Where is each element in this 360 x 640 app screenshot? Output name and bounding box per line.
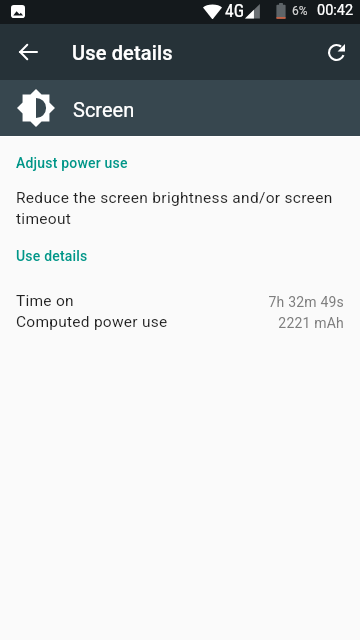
staticText: 00:42 xyxy=(317,2,354,19)
staticText: Computed power use xyxy=(16,313,168,331)
button[interactable]: Back xyxy=(0,24,56,80)
button[interactable]: Use details xyxy=(16,248,88,264)
button[interactable]: Adjust power use xyxy=(16,155,128,171)
button[interactable]: Time on xyxy=(16,292,344,310)
staticText: Use details xyxy=(72,41,173,64)
staticText: 4G xyxy=(225,1,244,22)
button[interactable]: Computed power use xyxy=(16,313,344,331)
staticText: 2221 mAh xyxy=(176,315,344,331)
staticText: Time on xyxy=(16,292,74,310)
staticText: Screen xyxy=(73,98,135,121)
staticText: 6% xyxy=(292,4,308,18)
staticText: Reduce the screen brightness and/or scre… xyxy=(16,189,342,228)
button[interactable]: Refresh xyxy=(308,24,360,80)
staticText: 7h 32m 49s xyxy=(82,294,344,310)
